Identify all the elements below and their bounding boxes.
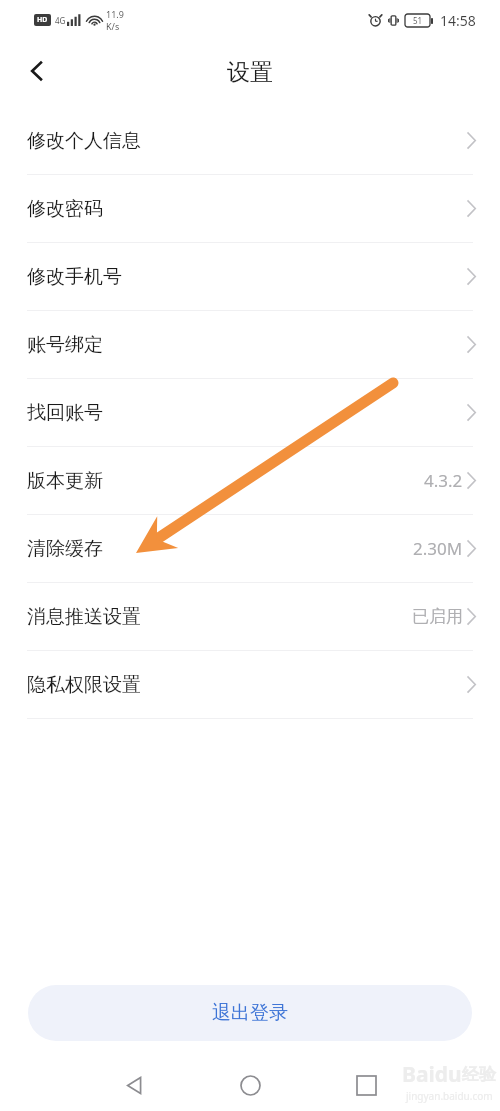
staticText: 修改手机号: [27, 265, 122, 289]
button[interactable]: 清除缓存: [0, 515, 500, 582]
button[interactable]: Recents: [342, 1061, 390, 1109]
button[interactable]: 隐私权限设置: [0, 651, 500, 718]
staticText: 51: [413, 15, 423, 26]
button[interactable]: 版本更新: [0, 447, 500, 514]
staticText: 退出登录: [212, 1001, 288, 1025]
staticText: 修改密码: [27, 197, 103, 221]
button[interactable]: 账号绑定: [0, 311, 500, 378]
staticText: 版本更新: [27, 469, 103, 493]
button[interactable]: 消息推送设置: [0, 583, 500, 650]
staticText: 消息推送设置: [27, 605, 141, 629]
staticText: 4.3.2: [424, 469, 463, 492]
button[interactable]: Back: [14, 48, 60, 94]
button[interactable]: 修改个人信息: [0, 107, 500, 174]
staticText: HD: [37, 15, 48, 25]
staticText: 隐私权限设置: [27, 673, 141, 697]
button[interactable]: 修改密码: [0, 175, 500, 242]
staticText: 11.9: [106, 8, 124, 20]
staticText: K/s: [106, 20, 120, 32]
button[interactable]: Back: [110, 1061, 158, 1109]
staticText: 已启用: [412, 606, 463, 627]
button[interactable]: 找回账号: [0, 379, 500, 446]
staticText: 设置: [227, 58, 273, 87]
staticText: 4G: [55, 15, 66, 26]
staticText: jingyan.baidu.com: [406, 1089, 493, 1103]
button[interactable]: Home: [226, 1061, 274, 1109]
button[interactable]: 修改手机号: [0, 243, 500, 310]
staticText: Baidu: [402, 1060, 462, 1089]
staticText: 2.30M: [413, 537, 463, 560]
staticText: 账号绑定: [27, 333, 103, 357]
staticText: 14:58: [440, 11, 476, 30]
staticText: 经验: [462, 1064, 496, 1085]
staticText: 找回账号: [27, 401, 103, 425]
staticText: 修改个人信息: [27, 129, 141, 153]
staticText: 清除缓存: [27, 537, 103, 561]
button[interactable]: 退出登录: [28, 985, 472, 1041]
